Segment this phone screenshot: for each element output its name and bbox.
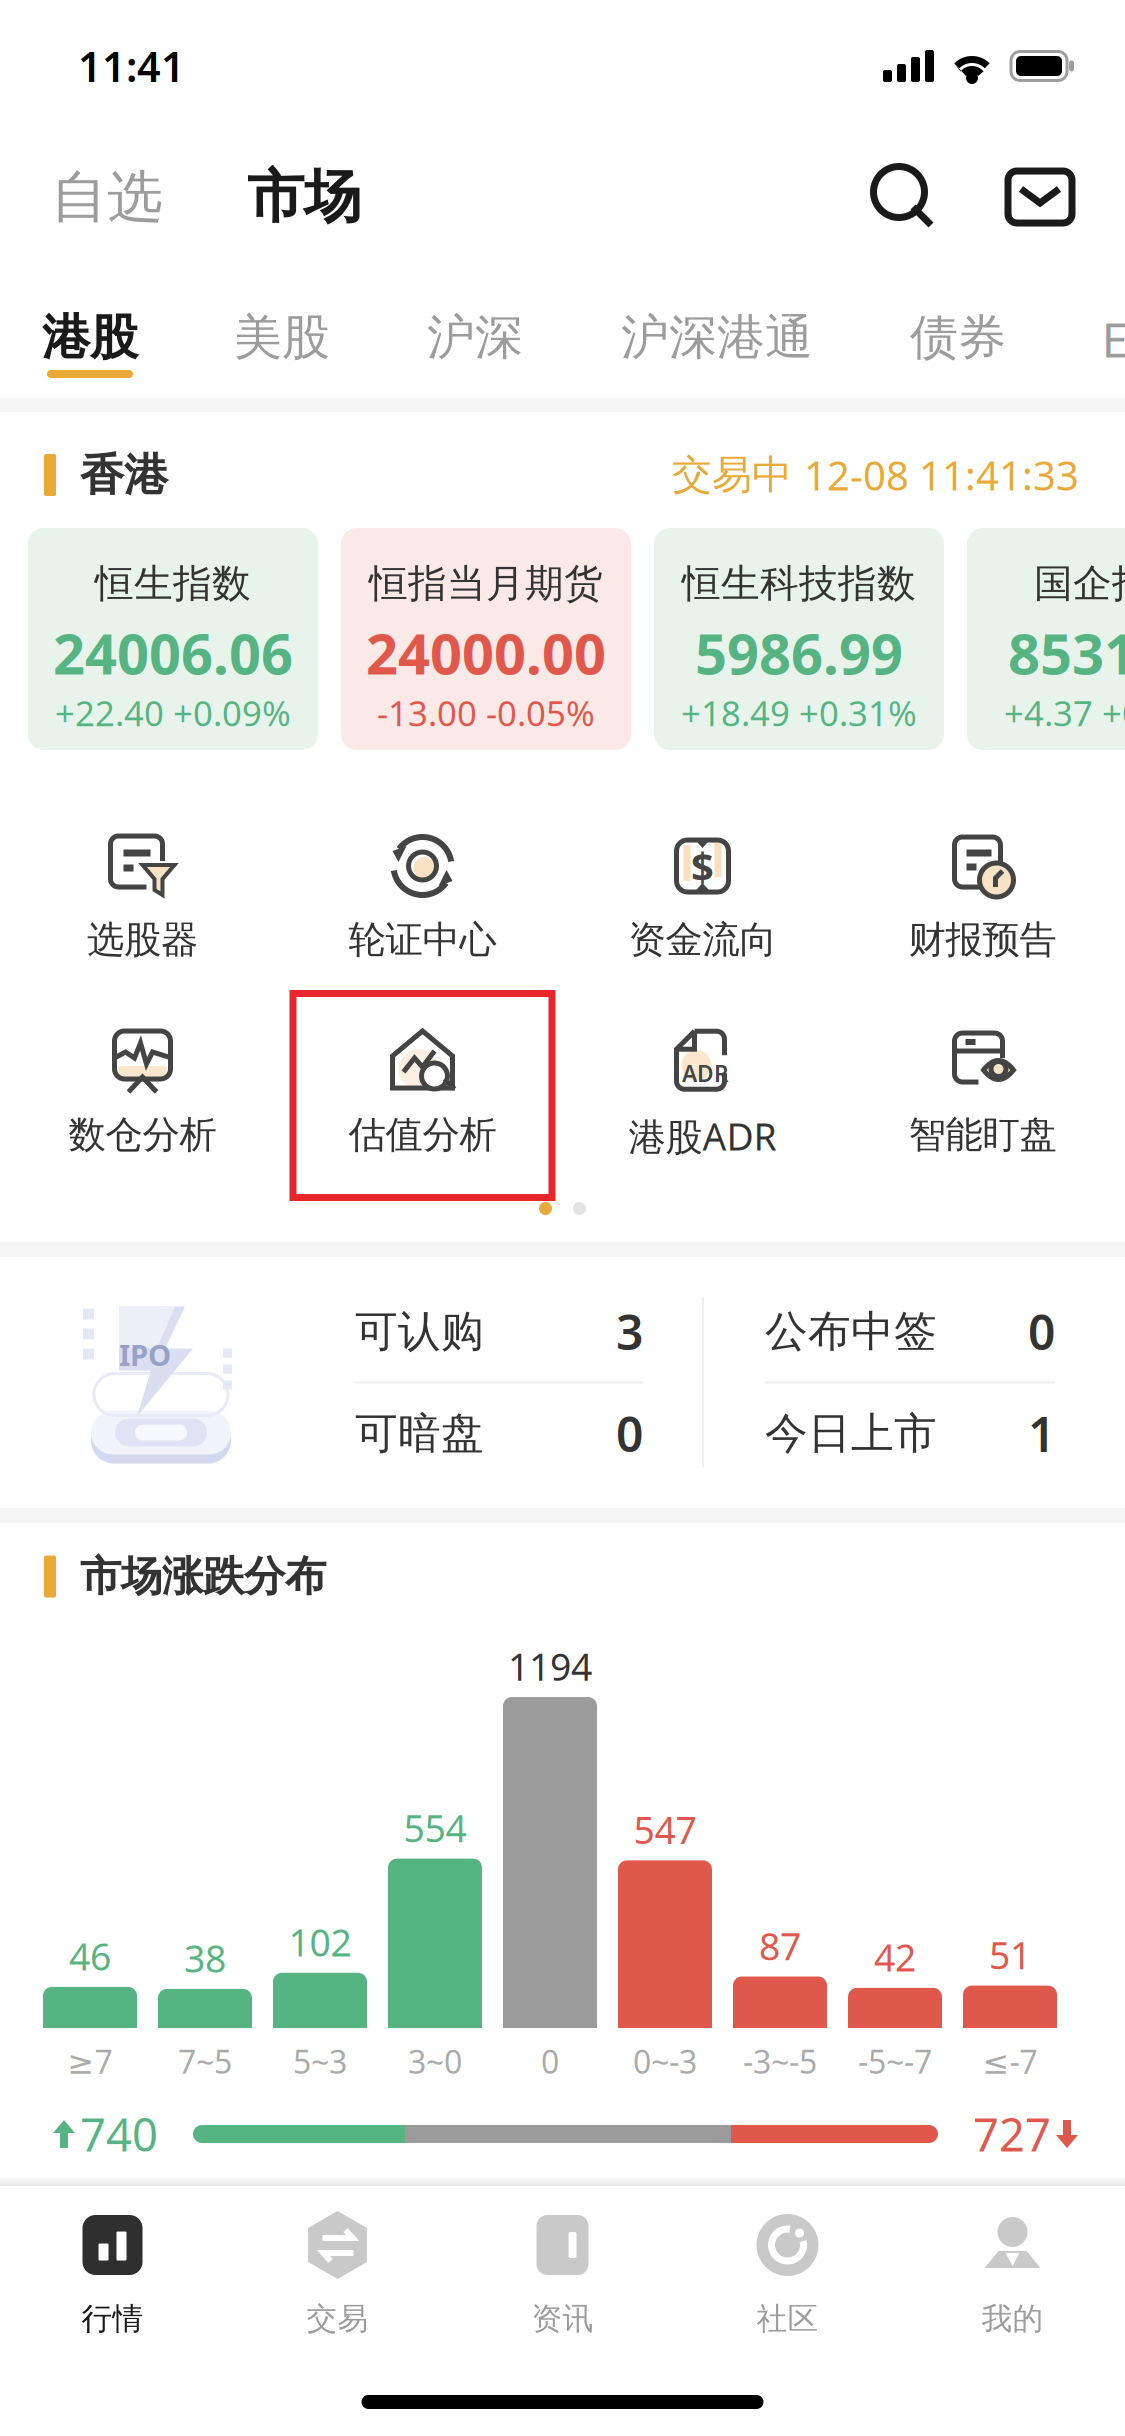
- staticText: 数仓分析: [68, 1112, 216, 1158]
- button[interactable]: 恒指当月期货: [341, 528, 631, 750]
- staticText: IPO: [119, 1335, 171, 1374]
- staticText: 8531.34: [1008, 615, 1125, 690]
- staticText: 香港: [80, 448, 168, 502]
- staticText: 恒指当月期货: [369, 560, 603, 607]
- staticText: 3: [616, 1300, 643, 1363]
- staticText: 547: [633, 1805, 696, 1854]
- button[interactable]: 社区: [675, 2186, 900, 2348]
- staticText: $: [691, 839, 714, 892]
- staticText: 1194: [508, 1641, 592, 1691]
- staticText: 交易中: [672, 450, 792, 500]
- staticText: 0: [541, 2040, 559, 2082]
- staticText: 社区: [756, 2300, 818, 2338]
- staticText: 我的: [981, 2300, 1043, 2338]
- staticText: 102: [288, 1917, 351, 1967]
- staticText: 债券: [910, 308, 1006, 367]
- staticText: 0: [1028, 1300, 1055, 1363]
- staticText: 今日上市: [765, 1407, 937, 1460]
- staticText: 7~5: [178, 2040, 232, 2082]
- staticText: 交易: [306, 2300, 368, 2338]
- staticText: 554: [403, 1803, 466, 1853]
- staticText: 可认购: [355, 1305, 484, 1358]
- staticText: 42: [874, 1932, 916, 1982]
- button[interactable]: 港股: [42, 262, 138, 398]
- staticText: 恒生科技指数: [682, 560, 916, 607]
- staticText: 沪深港通: [621, 308, 813, 367]
- button[interactable]: 恒生科技指数: [654, 528, 944, 750]
- button[interactable]: ADR: [562, 965, 842, 1160]
- button[interactable]: $: [562, 770, 842, 965]
- staticText: 12-08 11:41:33: [804, 448, 1079, 502]
- staticText: 24006.06: [53, 615, 293, 690]
- staticText: 恒生指数: [95, 560, 251, 607]
- button[interactable]: 行情: [0, 2186, 225, 2348]
- staticText: ADR: [682, 1058, 729, 1088]
- staticText: 市场涨跌分布: [80, 1551, 326, 1602]
- button[interactable]: 国企指数: [967, 528, 1125, 750]
- button[interactable]: 沪深: [427, 262, 523, 398]
- staticText: ≤-7: [982, 2040, 1037, 2082]
- staticText: 5~3: [293, 2040, 347, 2082]
- staticText: 46: [69, 1931, 111, 1981]
- staticText: 3~0: [408, 2040, 462, 2082]
- staticText: ETF: [1101, 307, 1125, 371]
- button[interactable]: 交易: [225, 2186, 450, 2348]
- button[interactable]: 自选: [43, 149, 171, 245]
- button[interactable]: 轮证中心: [282, 770, 562, 965]
- staticText: 选股器: [87, 917, 198, 963]
- staticText: +22.40 +0.09%: [55, 690, 291, 736]
- button[interactable]: 资讯: [450, 2186, 675, 2348]
- staticText: -3~-5: [743, 2040, 817, 2082]
- button[interactable]: 可认购: [355, 1281, 643, 1381]
- button[interactable]: 估值分析: [282, 965, 562, 1160]
- staticText: 资金流向: [628, 917, 776, 963]
- button[interactable]: ETF: [1098, 262, 1125, 398]
- staticText: 38: [184, 1933, 226, 1983]
- button[interactable]: 我的: [900, 2186, 1125, 2348]
- staticText: 沪深: [427, 308, 523, 367]
- staticText: 740: [80, 2104, 158, 2164]
- staticText: -5~-7: [858, 2040, 932, 2082]
- staticText: 国企指数: [1034, 560, 1125, 607]
- button[interactable]: 搜索: [869, 162, 939, 232]
- staticText: 港股: [42, 308, 138, 367]
- staticText: ≥7: [67, 2040, 112, 2082]
- button[interactable]: 市场: [239, 148, 369, 246]
- staticText: 87: [759, 1921, 801, 1971]
- button[interactable]: 可暗盘: [355, 1383, 643, 1483]
- staticText: 公布中签: [765, 1305, 937, 1358]
- staticText: 51: [989, 1930, 1031, 1980]
- staticText: 资讯: [531, 2300, 593, 2338]
- button[interactable]: 公布中签: [765, 1281, 1055, 1381]
- staticText: 财报预告: [908, 917, 1056, 963]
- button[interactable]: 消息: [1005, 162, 1075, 232]
- staticText: 智能盯盘: [908, 1112, 1056, 1158]
- button[interactable]: 选股器: [2, 770, 282, 965]
- staticText: 可暗盘: [355, 1407, 484, 1460]
- button[interactable]: 美股: [234, 262, 330, 398]
- button[interactable]: 沪深港通: [621, 262, 813, 398]
- staticText: 1: [1028, 1402, 1055, 1465]
- staticText: 0: [616, 1402, 643, 1465]
- staticText: 市场: [247, 162, 361, 232]
- staticText: +4.37 +0.05%: [1004, 690, 1125, 736]
- staticText: 轮证中心: [348, 917, 496, 963]
- staticText: 0~-3: [633, 2040, 697, 2082]
- staticText: 自选: [51, 163, 163, 231]
- staticText: +18.49 +0.31%: [681, 690, 917, 736]
- button[interactable]: 恒生指数: [28, 528, 318, 750]
- button[interactable]: 数仓分析: [2, 965, 282, 1160]
- staticText: -13.00 -0.05%: [377, 690, 595, 736]
- button[interactable]: 债券: [910, 262, 1006, 398]
- button[interactable]: 智能盯盘: [842, 965, 1122, 1160]
- staticText: 行情: [81, 2300, 143, 2338]
- staticText: 11:41: [78, 39, 185, 93]
- staticText: 24000.00: [366, 615, 606, 690]
- staticText: 港股ADR: [628, 1111, 776, 1161]
- staticText: 美股: [234, 308, 330, 367]
- button[interactable]: 财报预告: [842, 770, 1122, 965]
- button[interactable]: 今日上市: [765, 1383, 1055, 1483]
- staticText: 5986.99: [695, 615, 903, 690]
- staticText: 727: [973, 2104, 1051, 2164]
- staticText: 估值分析: [348, 1112, 496, 1158]
